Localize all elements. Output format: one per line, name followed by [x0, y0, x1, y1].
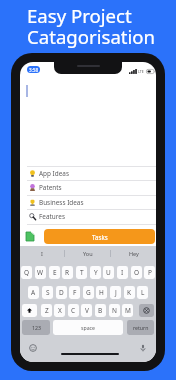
button[interactable]: Notes	[26, 232, 34, 241]
button[interactable]: V	[81, 304, 92, 317]
button[interactable]: Emoji keyboard	[29, 344, 37, 352]
staticText: I	[121, 268, 124, 277]
staticText: V	[85, 306, 89, 315]
staticText: App Ideas	[39, 169, 69, 178]
staticText: U	[106, 268, 111, 277]
button[interactable]: W	[35, 266, 46, 279]
button[interactable]: Shift	[22, 304, 37, 317]
button[interactable]: X	[54, 304, 65, 317]
button[interactable]: Patents	[20, 180, 156, 195]
button[interactable]: Delete	[139, 304, 154, 317]
button[interactable]: Features	[20, 209, 156, 224]
staticText: I	[41, 250, 43, 257]
button[interactable]: S	[42, 286, 53, 299]
button[interactable]: C	[68, 304, 79, 317]
button[interactable]: Q	[21, 266, 32, 279]
button[interactable]: I	[117, 266, 128, 279]
staticText: L	[141, 288, 145, 297]
button[interactable]: N	[109, 304, 120, 317]
staticText: C	[71, 306, 76, 315]
staticText: E	[53, 268, 57, 277]
button[interactable]: Business Ideas	[20, 195, 156, 210]
button[interactable]: G	[83, 286, 94, 299]
button[interactable]: E	[49, 266, 60, 279]
button[interactable]: Hey	[111, 247, 156, 260]
button[interactable]: M	[122, 304, 133, 317]
button[interactable]: You	[65, 247, 110, 260]
staticText: space	[81, 324, 96, 331]
button[interactable]: I	[20, 247, 64, 260]
staticText: LTE	[138, 69, 144, 74]
staticText: return	[133, 324, 149, 331]
staticText: R	[65, 268, 70, 277]
staticText: J	[115, 288, 117, 297]
button[interactable]: Tasks	[44, 229, 155, 244]
staticText: O	[134, 268, 140, 277]
button[interactable]: Z	[41, 304, 52, 317]
staticText: S	[46, 288, 50, 297]
button[interactable]: L	[137, 286, 148, 299]
button[interactable]: U	[103, 266, 114, 279]
button[interactable]: T	[76, 266, 87, 279]
staticText: M	[125, 306, 131, 315]
staticText: H	[99, 288, 104, 297]
button[interactable]: J	[110, 286, 121, 299]
staticText: Hey	[129, 250, 139, 257]
staticText: K	[127, 288, 132, 297]
staticText: Y	[94, 268, 98, 277]
staticText: Business Ideas	[39, 198, 84, 207]
staticText: F	[73, 288, 77, 297]
button[interactable]: H	[96, 286, 107, 299]
button[interactable]: A	[28, 286, 39, 299]
staticText: 123	[32, 324, 41, 331]
staticText: Easy Project	[27, 3, 132, 28]
staticText: A	[31, 288, 36, 297]
staticText: W	[37, 268, 44, 277]
button[interactable]: P	[144, 266, 155, 279]
staticText: N	[112, 306, 117, 315]
staticText: X	[58, 306, 62, 315]
button[interactable]: R	[62, 266, 73, 279]
staticText: Catagorisation	[27, 24, 156, 49]
button[interactable]: K	[124, 286, 135, 299]
staticText: Features	[39, 212, 65, 221]
button[interactable]: 123	[22, 320, 50, 335]
staticText: Q	[24, 268, 30, 277]
staticText: D	[59, 288, 64, 297]
staticText: Tasks	[92, 233, 108, 241]
staticText: You	[83, 250, 93, 257]
button[interactable]: return	[127, 320, 154, 335]
button[interactable]: Dictate	[139, 344, 147, 352]
button[interactable]: Y	[90, 266, 101, 279]
button[interactable]: D	[56, 286, 67, 299]
button[interactable]: B	[95, 304, 106, 317]
button[interactable]: O	[131, 266, 142, 279]
staticText: Z	[45, 306, 49, 315]
staticText: T	[80, 268, 84, 277]
staticText: G	[86, 288, 91, 297]
staticText: P	[148, 268, 152, 277]
button[interactable]: App Ideas	[20, 166, 156, 181]
button[interactable]: space	[53, 320, 123, 335]
staticText: 3:58	[29, 67, 39, 73]
staticText: Patents	[39, 183, 62, 192]
button[interactable]: F	[69, 286, 80, 299]
staticText: B	[98, 306, 103, 315]
